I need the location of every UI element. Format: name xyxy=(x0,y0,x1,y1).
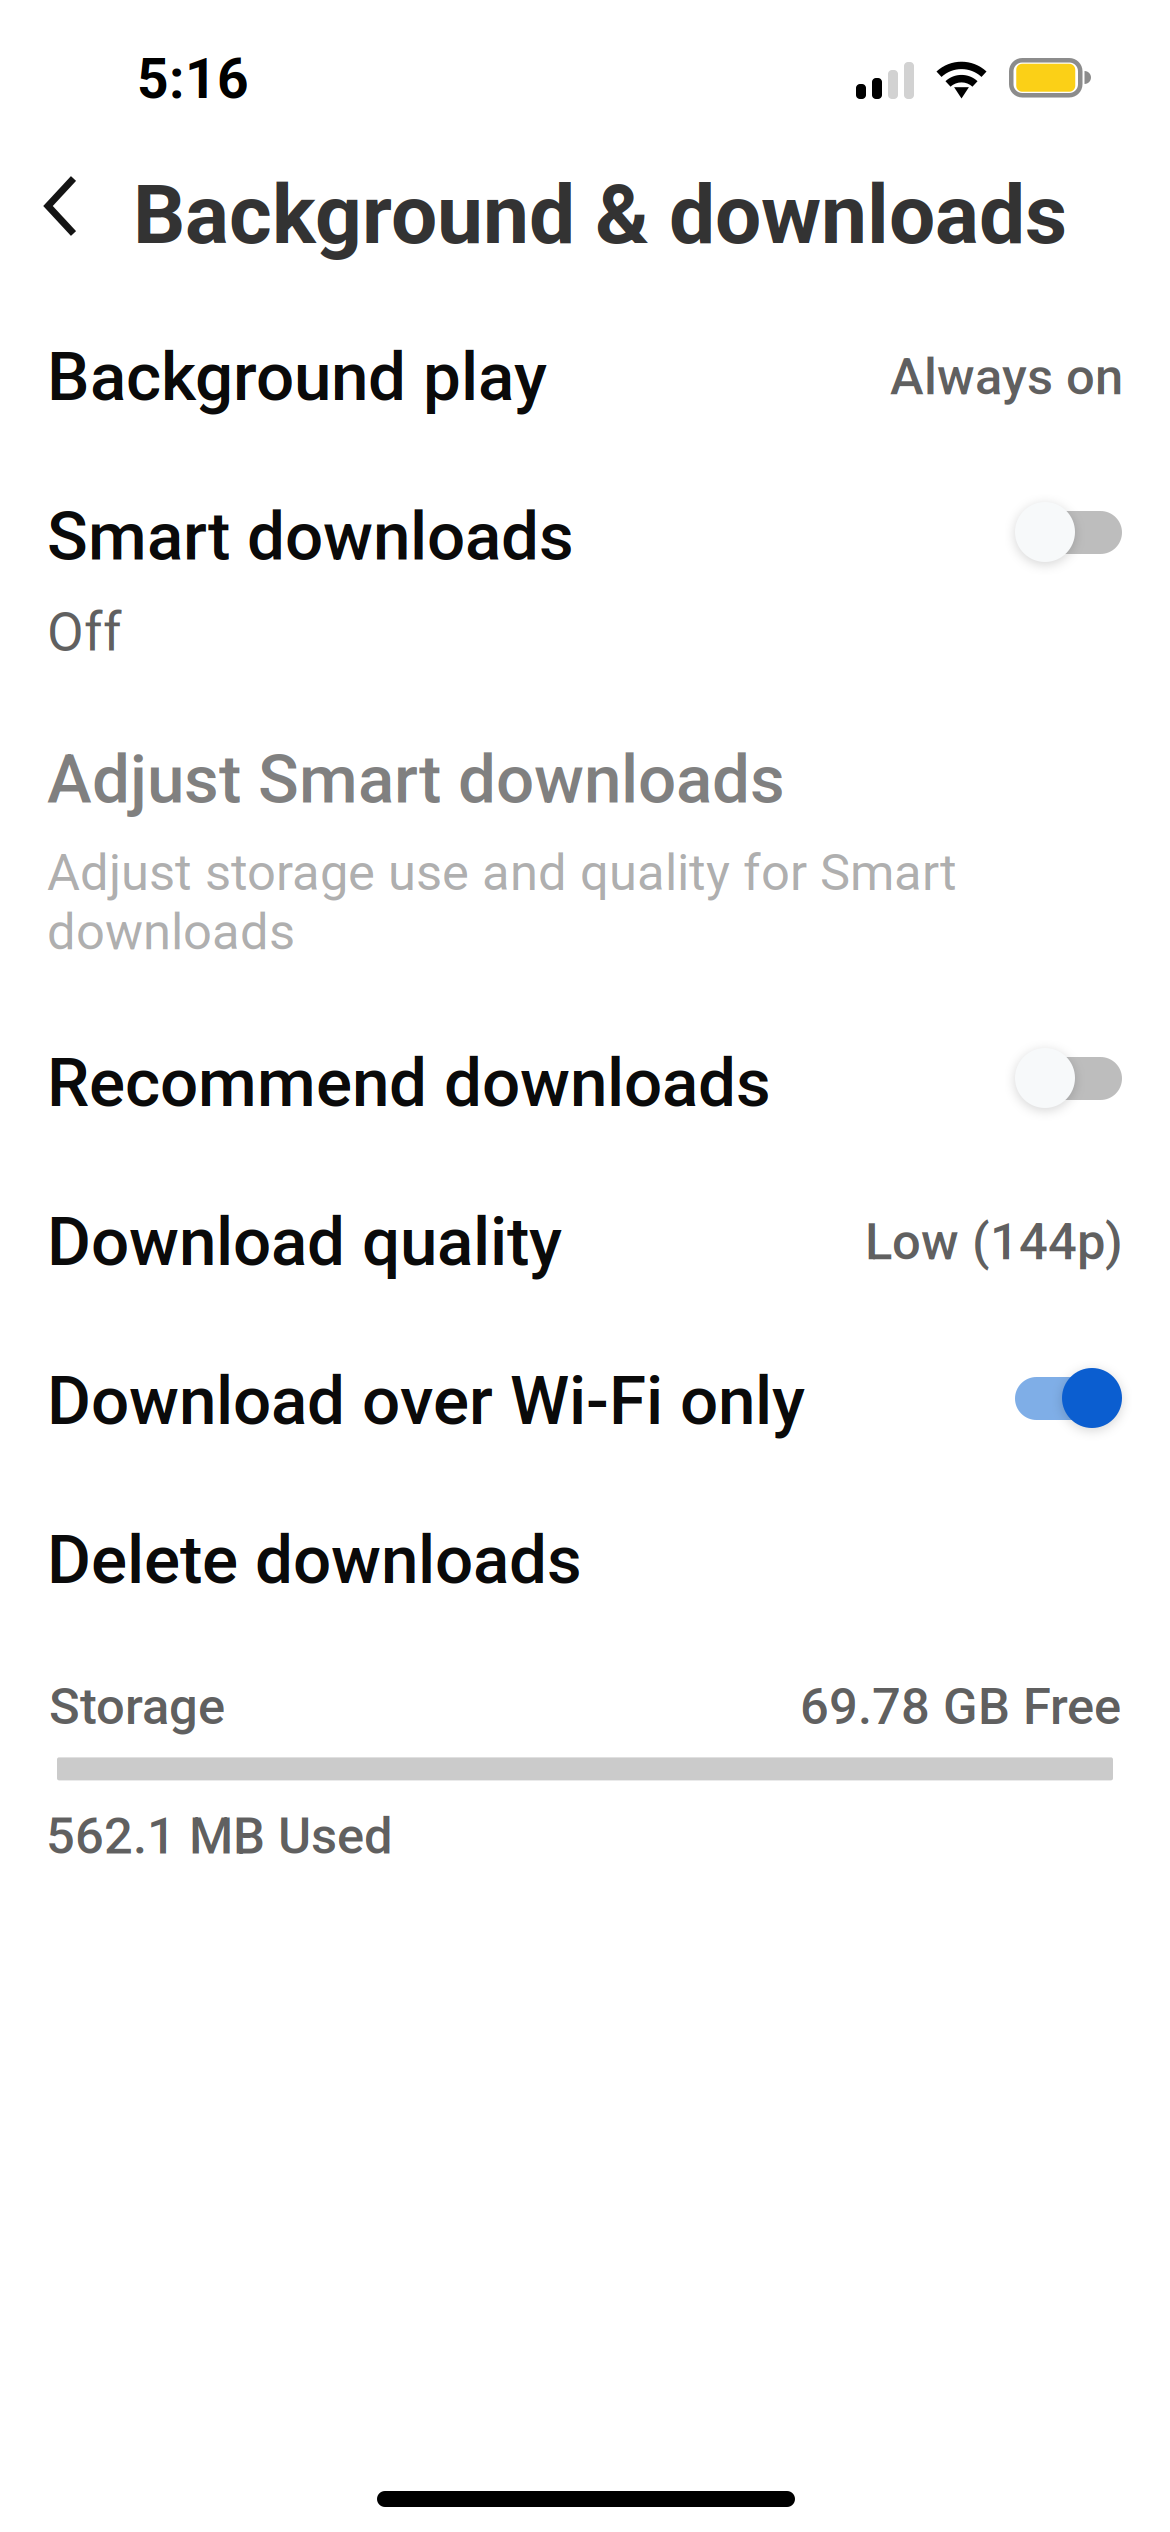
button[interactable]: Back xyxy=(0,145,132,305)
button[interactable]: Adjust Smart downloads xyxy=(0,731,1170,1021)
button[interactable]: Download quality xyxy=(0,1174,1170,1310)
button[interactable]: Download over Wi-Fi only xyxy=(0,1333,1170,1469)
staticText: Delete downloads xyxy=(47,1520,582,1599)
staticText: Adjust storage use and quality for Smart… xyxy=(47,843,957,962)
button[interactable]: Background & downloads xyxy=(0,145,1170,305)
staticText: Smart downloads xyxy=(47,497,574,576)
button[interactable]: Recommend downloads, off xyxy=(1015,1048,1122,1109)
staticText: Background play xyxy=(47,337,547,416)
staticText: Storage xyxy=(49,1677,225,1736)
staticText: Adjust Smart downloads xyxy=(47,740,785,819)
button[interactable]: Smart downloads, off xyxy=(1015,502,1122,563)
staticText: Download quality xyxy=(47,1202,562,1281)
staticText: Recommend downloads xyxy=(47,1043,771,1122)
button[interactable]: Download over Wi-Fi only, on xyxy=(1015,1368,1122,1429)
button[interactable]: Recommend downloads xyxy=(0,1015,1170,1151)
button[interactable]: Smart downloads xyxy=(0,488,1170,698)
staticText: Download over Wi-Fi only xyxy=(47,1361,805,1440)
button[interactable]: Delete downloads xyxy=(0,1492,1170,1628)
staticText: Off xyxy=(47,601,122,663)
staticText: Background & downloads xyxy=(133,167,1067,263)
staticText: Always on xyxy=(890,347,1123,407)
staticText: Low (144p) xyxy=(865,1212,1123,1272)
button[interactable]: Background play xyxy=(0,309,1170,445)
staticText: 5:16 xyxy=(137,47,249,111)
staticText: 562.1 MB Used xyxy=(46,1806,393,1866)
staticText: 69.78 GB Free xyxy=(800,1677,1121,1736)
